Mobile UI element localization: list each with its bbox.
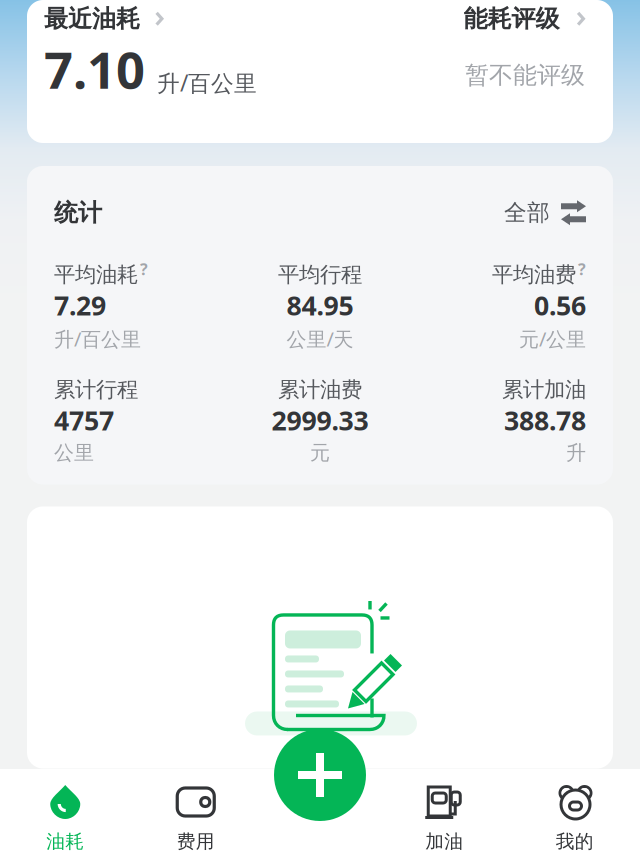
button[interactable]: 费用 xyxy=(130,784,261,853)
staticText: 累计加油 xyxy=(502,376,586,403)
staticText: 全部 xyxy=(504,199,550,227)
staticText: 7.29 xyxy=(54,287,106,323)
staticText: 388.78 xyxy=(504,402,586,438)
button[interactable]: 油耗 xyxy=(0,784,130,853)
staticText: 元/公里 xyxy=(519,325,586,352)
staticText: 公里/天 xyxy=(286,325,353,352)
button[interactable]: 最近油耗 xyxy=(44,4,163,33)
staticText: 7.10 xyxy=(44,35,145,103)
button[interactable]: 能耗评级 xyxy=(463,4,585,33)
staticText: 升/百公里 xyxy=(54,325,141,352)
staticText: 0.56 xyxy=(534,287,586,323)
staticText: 累计行程 xyxy=(54,376,138,403)
staticText: 能耗评级 xyxy=(463,4,559,33)
staticText: 加油 xyxy=(425,830,463,853)
staticText: 升/百公里 xyxy=(157,68,257,98)
button[interactable]: 全部 xyxy=(504,199,586,227)
staticText: ? xyxy=(578,258,586,280)
staticText: 统计 xyxy=(54,198,102,227)
staticText: 平均油费 xyxy=(492,261,576,288)
staticText: 平均行程 xyxy=(278,261,362,288)
staticText: 2999.33 xyxy=(271,402,368,438)
staticText: 暂不能评级 xyxy=(465,60,585,90)
button[interactable]: 我的 xyxy=(509,784,640,853)
staticText: 84.95 xyxy=(286,287,353,323)
staticText: 元 xyxy=(310,440,330,465)
button[interactable]: 新增记录 xyxy=(274,729,366,821)
staticText: 油耗 xyxy=(46,830,84,853)
staticText: 升 xyxy=(566,440,586,465)
staticText: 累计油费 xyxy=(278,376,362,403)
staticText: 最近油耗 xyxy=(44,4,140,33)
staticText: 4757 xyxy=(54,402,114,438)
staticText: 公里 xyxy=(54,440,94,465)
staticText: 费用 xyxy=(177,830,215,853)
staticText: 平均油耗 xyxy=(54,261,138,288)
staticText: 我的 xyxy=(556,830,594,853)
button[interactable]: 加油 xyxy=(379,784,509,853)
staticText: ? xyxy=(140,258,148,280)
